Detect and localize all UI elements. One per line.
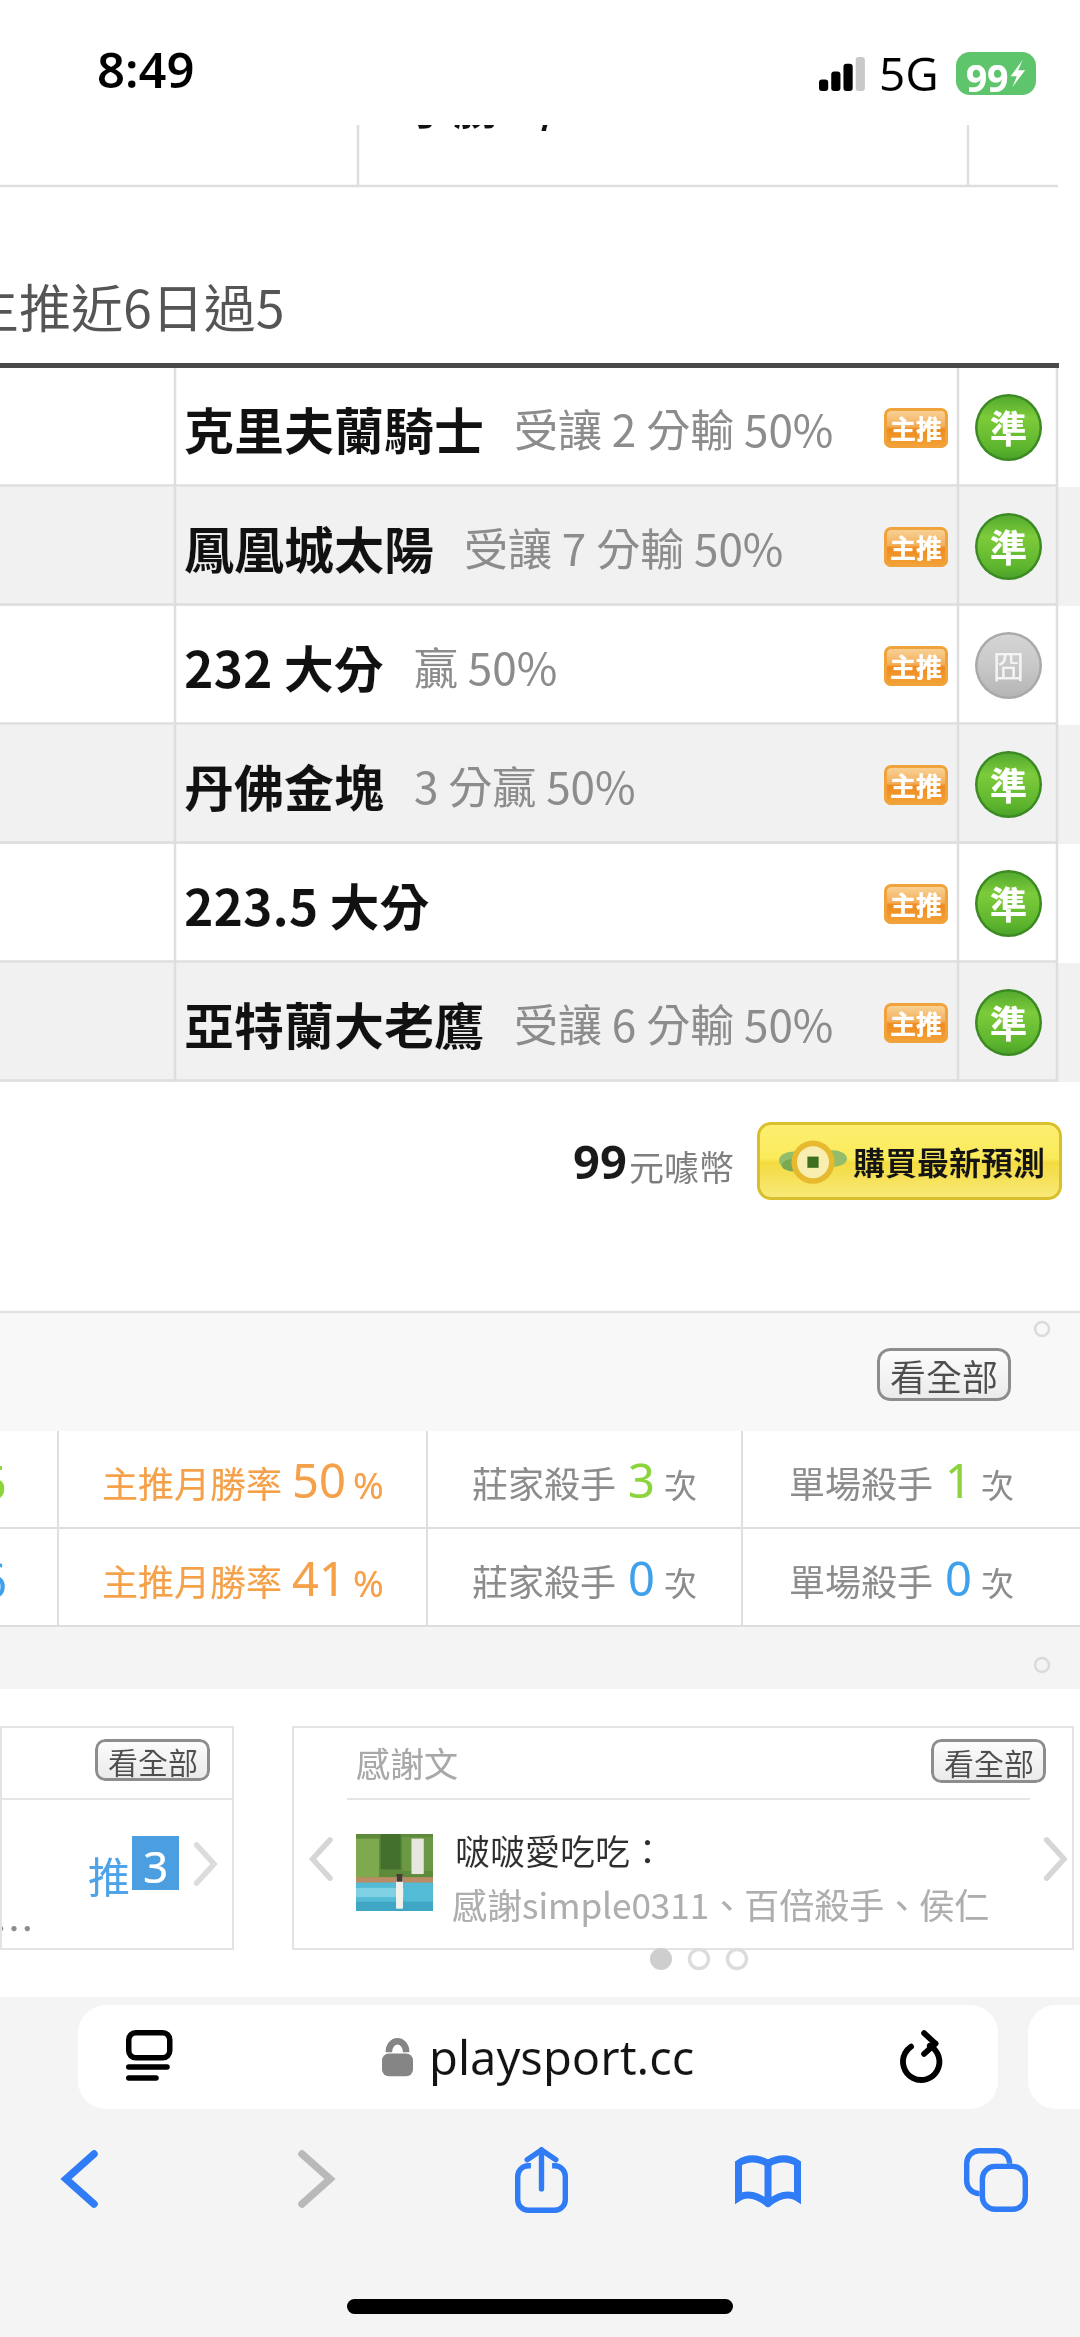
staticText: % bbox=[353, 1557, 384, 1607]
staticText: 5G bbox=[879, 42, 939, 105]
button[interactable]: 克里夫蘭騎士 bbox=[0, 368, 1080, 487]
button[interactable]: Reload bbox=[896, 2029, 952, 2085]
button[interactable]: 看全部 bbox=[877, 1348, 1011, 1401]
button[interactable]: 主推 bbox=[884, 408, 948, 448]
staticText: 41 bbox=[292, 1546, 346, 1610]
staticText: 推 bbox=[88, 1844, 131, 1905]
button[interactable]: Tabs bbox=[930, 2132, 1062, 2226]
staticText: 50 bbox=[292, 1448, 346, 1512]
staticText: 1 bbox=[945, 1448, 972, 1512]
staticText: 3 分贏 50% bbox=[414, 753, 636, 817]
staticText: 6 bbox=[0, 1548, 7, 1612]
staticText: 看全部 bbox=[890, 1349, 999, 1401]
staticText: 次 bbox=[981, 1558, 1014, 1606]
button[interactable]: 看全部 bbox=[0, 1726, 234, 1950]
staticText: 贏 50% bbox=[414, 634, 558, 698]
staticText: 0 bbox=[628, 1546, 655, 1610]
button[interactable]: 購買最新預測 bbox=[757, 1122, 1062, 1200]
staticText: 亞特蘭大老鷹 bbox=[184, 987, 484, 1059]
staticText: 看全部 bbox=[944, 1740, 1034, 1783]
staticText: 次 bbox=[664, 1558, 697, 1606]
staticText: 主推 bbox=[890, 528, 943, 566]
staticText: 次 bbox=[981, 1460, 1014, 1508]
staticText: 感謝文 bbox=[356, 1738, 458, 1787]
button[interactable]: Forward bbox=[250, 2132, 382, 2226]
button[interactable]: 232 大分 bbox=[0, 606, 1080, 725]
button[interactable]: 主推 bbox=[884, 646, 948, 686]
button[interactable]: 主推 bbox=[884, 1003, 948, 1043]
button[interactable]: Bookmarks bbox=[702, 2132, 834, 2226]
staticText: 看全部 bbox=[108, 1739, 198, 1781]
staticText: … bbox=[0, 1898, 34, 1956]
staticText: 感謝simple0311、百倍殺手、侯仁豐、E… bbox=[452, 1878, 1052, 1929]
staticText: 次 bbox=[664, 1460, 697, 1508]
staticText: 99 bbox=[573, 1129, 627, 1193]
button[interactable]: 主推 bbox=[884, 527, 948, 567]
staticText: 啵啵愛吃吃： bbox=[455, 1824, 666, 1875]
staticText: 準 bbox=[990, 519, 1027, 573]
staticText: 0 bbox=[945, 1546, 972, 1610]
staticText: 鳳凰城太陽 bbox=[184, 511, 434, 583]
button[interactable]: 小勝 1/2 bbox=[0, 125, 1080, 188]
button[interactable]: Share bbox=[475, 2132, 607, 2226]
button[interactable]: 看全部 bbox=[931, 1739, 1046, 1783]
staticText: 丹佛金塊 bbox=[184, 749, 384, 821]
button[interactable]: 亞特蘭大老鷹 bbox=[0, 963, 1080, 1082]
staticText: 受讓 6 分輸 50% bbox=[514, 991, 834, 1055]
staticText: 受讓 7 分輸 50% bbox=[464, 515, 784, 579]
staticText: 主推月勝率 bbox=[102, 1554, 283, 1606]
staticText: 232 大分 bbox=[184, 630, 384, 702]
button[interactable]: 6 bbox=[0, 1529, 1080, 1627]
staticText: 3 bbox=[628, 1448, 655, 1512]
staticText: 主推近6日過5 bbox=[0, 268, 285, 343]
staticText: 準 bbox=[990, 757, 1027, 811]
button[interactable]: 223.5 大分 bbox=[0, 844, 1080, 963]
button[interactable]: 5 bbox=[0, 1431, 1080, 1529]
staticText: 主推 bbox=[890, 409, 943, 447]
staticText: 223.5 大分 bbox=[184, 868, 430, 940]
staticText: % bbox=[353, 1459, 384, 1509]
staticText: 主推 bbox=[890, 766, 943, 804]
staticText: 莊家殺手 bbox=[472, 1456, 617, 1508]
button[interactable]: 鳳凰城太陽 bbox=[0, 487, 1080, 606]
staticText: 購買最新預測 bbox=[853, 1138, 1046, 1184]
staticText: 單場殺手 bbox=[789, 1456, 934, 1508]
staticText: 主推 bbox=[890, 1004, 943, 1042]
button[interactable]: Page settings bbox=[126, 2030, 174, 2084]
staticText: 99 bbox=[966, 52, 1009, 95]
staticText: 受讓 2 分輸 50% bbox=[514, 396, 834, 460]
button[interactable]: Page settings bbox=[78, 2005, 998, 2109]
staticText: 3 bbox=[143, 1836, 169, 1890]
staticText: 5 bbox=[0, 1450, 7, 1514]
staticText: 主推 bbox=[890, 885, 943, 923]
button[interactable]: 主推 bbox=[884, 884, 948, 924]
staticText: 準 bbox=[990, 400, 1027, 454]
staticText: 主推月勝率 bbox=[102, 1456, 283, 1508]
button[interactable]: 主推 bbox=[884, 765, 948, 805]
staticText: 囧 bbox=[993, 642, 1024, 687]
staticText: 元噱幣 bbox=[629, 1140, 735, 1191]
staticText: 準 bbox=[990, 876, 1027, 930]
button[interactable]: 丹佛金塊 bbox=[0, 725, 1080, 844]
staticText: 8:49 bbox=[97, 36, 195, 103]
staticText: 小勝 1/2 bbox=[405, 125, 588, 131]
staticText: 單場殺手 bbox=[789, 1554, 934, 1606]
button[interactable]: 感謝文 bbox=[292, 1726, 1074, 1950]
staticText: 莊家殺手 bbox=[472, 1554, 617, 1606]
staticText: 準 bbox=[990, 995, 1027, 1049]
button[interactable]: Back bbox=[14, 2132, 146, 2226]
staticText: 主推 bbox=[890, 647, 943, 685]
staticText: playsport.cc bbox=[429, 2025, 695, 2089]
staticText: 克里夫蘭騎士 bbox=[184, 392, 484, 464]
